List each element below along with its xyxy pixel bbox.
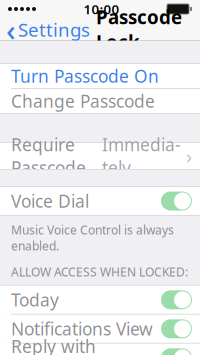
staticText: 10:00 [83,0,119,18]
staticText: Change Passcode [11,89,155,112]
staticText: Settings [18,17,90,42]
staticText: ‹ [6,10,16,49]
button[interactable]: Reply with Message [0,344,200,355]
staticText: ALLOW ACCESS WHEN LOCKED: [11,264,188,280]
button[interactable]: Change Passcode [0,89,200,113]
staticText: Today [11,288,59,311]
button[interactable]: Today [0,286,200,314]
button[interactable]: Turn Passcode On [0,64,200,88]
staticText: Passcode Lock [96,5,182,54]
staticText: › [186,143,192,169]
button[interactable]: ‹ [0,18,90,41]
staticText: Immediately [102,133,181,179]
staticText: Voice Dial [11,189,89,212]
staticText: Music Voice Control is always enabled. [11,222,174,254]
staticText: Turn Passcode On [11,64,159,87]
staticText: Notifications View [11,317,153,340]
button[interactable]: Voice Dial [0,187,200,215]
button[interactable]: Require Passcode [0,143,200,169]
staticText: Reply with Message [11,335,96,355]
button[interactable]: Notifications View [0,315,200,343]
staticText: Require Passcode [11,133,86,179]
